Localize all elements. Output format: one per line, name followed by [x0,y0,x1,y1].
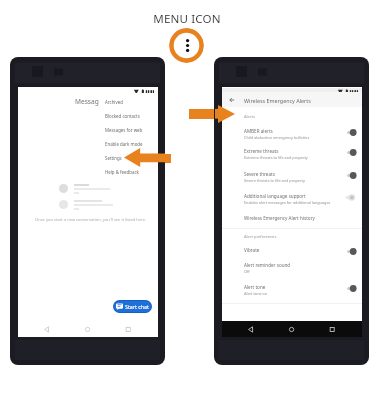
button[interactable]: Help & feedback [99,165,157,178]
staticText: Once you start a new conversation, you'l… [35,217,147,223]
button[interactable]: Severe threats [222,168,362,184]
button[interactable]: Alert reminder sound [222,259,362,275]
staticText: Severe threats to life and property [244,178,305,183]
staticText: Additional language support [244,193,306,199]
staticText: Messages for web [105,127,143,133]
staticText: Wireless Emergency Alert history [244,215,315,221]
button[interactable]: Extreme threats [222,145,362,161]
staticText: Extreme threats [244,148,279,154]
staticText: Alert preferences [244,234,277,239]
button[interactable]: Start chat [114,301,151,312]
staticText: Vibrate [244,247,260,253]
staticText: Blocked contacts [105,113,140,119]
staticText: Alert tone [244,284,266,290]
staticText: Child abduction emergency bulletins [244,135,310,140]
button[interactable]: Messages for web [99,123,157,136]
staticText: Archived [105,99,123,105]
staticText: Alert tone on [244,291,268,296]
staticText: Wireless Emergency Alerts [244,97,311,104]
button[interactable] [59,180,149,197]
staticText: Enable dark mode [105,141,143,147]
staticText: Alert reminder sound [244,262,291,268]
button[interactable]: Archived [99,95,157,108]
staticText: Off [244,269,250,274]
button[interactable]: Enable dark mode [99,137,157,150]
button[interactable]: Additional language support [222,190,362,206]
staticText: Alerts [244,114,255,119]
button[interactable]: Settings [99,151,157,164]
button[interactable]: Vibrate [222,244,362,256]
staticText: MENU ICON [147,11,227,27]
button[interactable]: Navigate up [228,96,236,104]
staticText: Enables alert messages for additional la… [244,200,331,205]
button[interactable]: Wireless Emergency Alert history [222,212,362,224]
staticText: Severe threats [244,171,275,177]
button[interactable] [59,196,149,213]
button[interactable]: Overflow menu icon [169,28,204,63]
button[interactable]: Blocked contacts [99,109,157,122]
staticText: Messages [75,97,106,106]
staticText: Extreme threats to life and property [244,155,308,160]
staticText: Start chat [125,303,149,310]
button[interactable]: AMBER alerts [222,125,362,141]
staticText: AMBER alerts [244,128,273,134]
button[interactable]: Alert tone [222,281,362,297]
staticText: Help & feedback [105,169,139,175]
staticText: Settings [105,155,122,161]
